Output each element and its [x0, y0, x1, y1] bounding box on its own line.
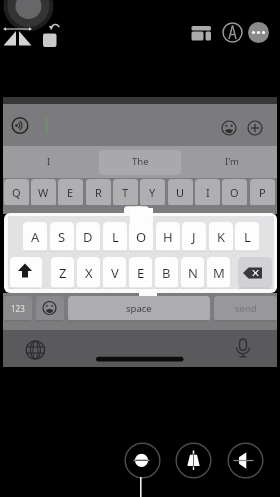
button[interactable]: P — [250, 179, 275, 206]
button[interactable] — [227, 442, 264, 479]
button[interactable]: B — [155, 257, 178, 289]
button[interactable]: T — [113, 179, 138, 206]
button[interactable]: D — [76, 222, 100, 252]
button[interactable]: N — [181, 257, 204, 289]
staticText: Y — [149, 185, 156, 200]
button[interactable]: Q — [4, 179, 29, 206]
button[interactable] — [175, 442, 212, 479]
button[interactable]: J — [182, 222, 206, 252]
button[interactable]: L — [235, 222, 259, 252]
button[interactable]: V — [103, 257, 126, 289]
staticText: L — [112, 228, 119, 246]
staticText: P — [259, 185, 266, 200]
button[interactable] — [40, 26, 62, 48]
staticText: H — [163, 228, 173, 246]
staticText: M — [213, 264, 225, 282]
button[interactable]: X — [77, 257, 100, 289]
staticText: E — [67, 185, 74, 200]
staticText: U — [176, 185, 185, 200]
staticText: O — [230, 185, 239, 200]
button[interactable]: O — [222, 179, 247, 206]
button[interactable]: U — [168, 179, 193, 206]
staticText: 123 — [11, 303, 25, 314]
button[interactable] — [124, 442, 161, 479]
button[interactable]: K — [209, 222, 233, 252]
button[interactable]: 123 — [4, 296, 32, 321]
staticText: A — [31, 228, 40, 246]
staticText: N — [188, 264, 198, 282]
button[interactable]: S — [50, 222, 74, 252]
button[interactable]: I — [195, 179, 220, 206]
button[interactable]: Z — [51, 257, 74, 289]
staticText: I'm — [225, 155, 239, 168]
staticText: V — [111, 264, 119, 282]
staticText: J — [192, 228, 196, 246]
button[interactable]: I'm — [186, 147, 277, 176]
staticText: B — [162, 264, 171, 282]
staticText: X — [85, 264, 93, 282]
button[interactable]: A — [23, 222, 47, 252]
button[interactable] — [246, 20, 271, 45]
staticText: S — [58, 228, 66, 246]
staticText: Q — [12, 185, 21, 200]
button[interactable]: W — [31, 179, 56, 206]
button[interactable]: R — [86, 179, 111, 206]
button[interactable] — [2, 26, 34, 48]
staticText: space — [126, 302, 152, 315]
button[interactable] — [238, 257, 272, 288]
staticText: D — [83, 228, 93, 246]
staticText: L — [244, 228, 251, 246]
button[interactable]: O — [129, 222, 153, 252]
button[interactable] — [188, 22, 214, 44]
button[interactable]: E — [129, 257, 152, 289]
staticText: T — [122, 185, 129, 200]
button[interactable]: Y — [140, 179, 165, 206]
staticText: Z — [59, 264, 67, 282]
button[interactable] — [36, 296, 64, 321]
staticText: I — [206, 185, 210, 200]
staticText: K — [217, 228, 226, 246]
staticText: send — [235, 302, 257, 315]
button[interactable] — [10, 257, 42, 289]
staticText: O — [136, 228, 147, 246]
button[interactable]: E — [58, 179, 83, 206]
button[interactable]: space — [68, 296, 210, 321]
button[interactable]: L — [103, 222, 127, 252]
button[interactable]: I — [3, 147, 94, 176]
staticText: I — [47, 155, 51, 168]
button[interactable] — [221, 21, 244, 44]
staticText: R — [95, 185, 102, 200]
button[interactable]: send — [214, 296, 277, 321]
staticText: The — [132, 155, 149, 168]
button[interactable]: M — [207, 257, 230, 289]
staticText: E — [137, 264, 145, 282]
staticText: W — [38, 185, 49, 200]
button[interactable]: H — [156, 222, 180, 252]
button[interactable]: The — [94, 147, 186, 176]
